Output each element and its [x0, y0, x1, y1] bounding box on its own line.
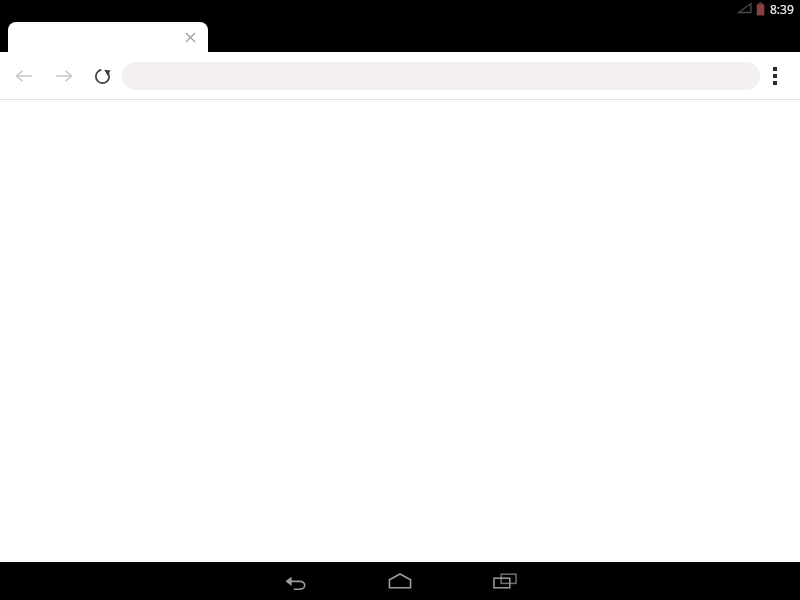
button[interactable]: Close tab	[8, 22, 208, 52]
button[interactable]: Back	[4, 56, 44, 96]
staticText: 8:39	[770, 1, 794, 17]
button[interactable]: Reload	[82, 56, 122, 96]
button[interactable]: More options	[755, 56, 795, 96]
button[interactable]: Back	[266, 562, 326, 600]
button[interactable]: Forward	[44, 56, 84, 96]
button[interactable]: Home	[370, 562, 430, 600]
button[interactable]: Close tab	[178, 25, 202, 49]
button[interactable]: Recent apps	[475, 562, 535, 600]
